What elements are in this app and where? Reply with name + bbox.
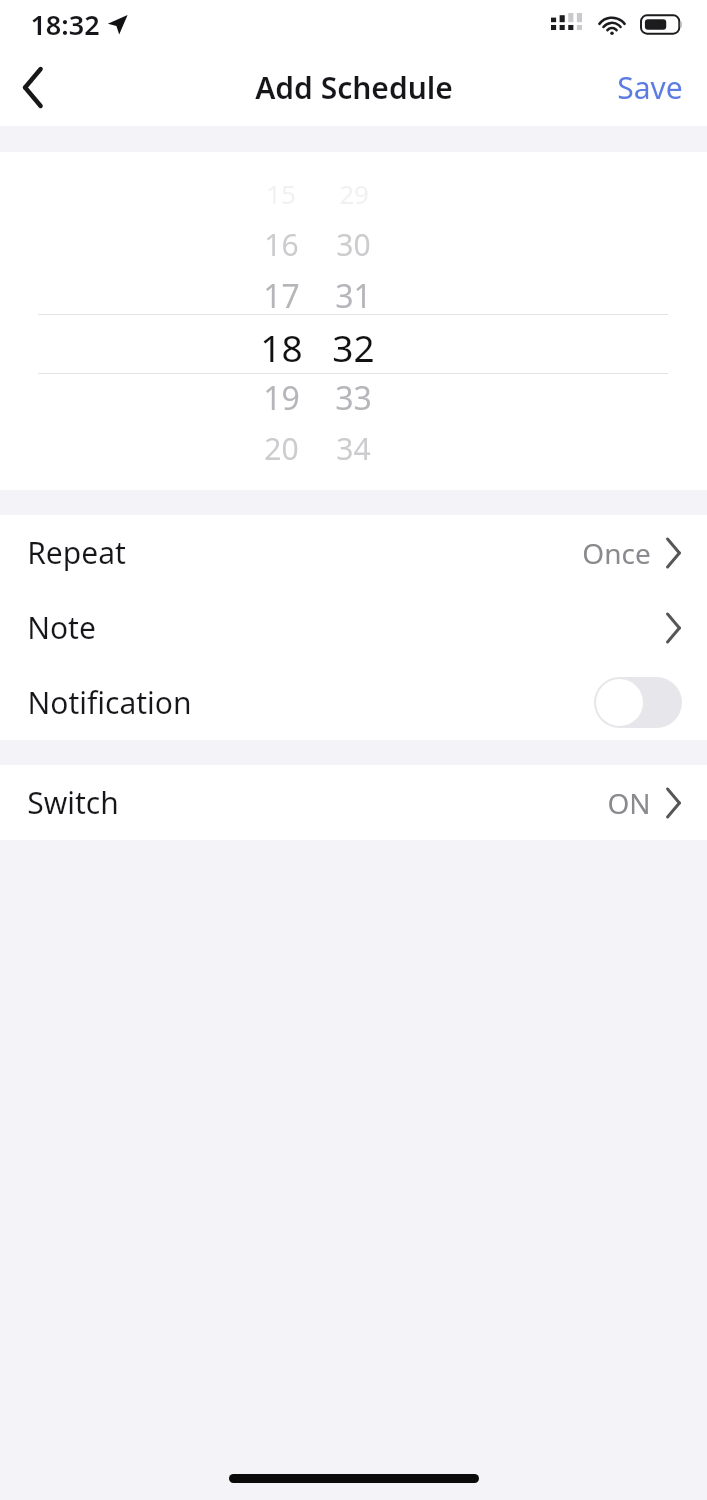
staticText: Note	[27, 607, 96, 648]
staticText: Switch	[27, 782, 119, 823]
staticText: Add Schedule	[255, 67, 453, 108]
staticText: Notification	[27, 682, 192, 723]
staticText: Repeat	[27, 532, 126, 573]
staticText: Once	[582, 534, 651, 572]
button[interactable]: Back	[0, 54, 66, 120]
staticText: ON	[607, 784, 651, 822]
staticText: 19	[263, 376, 300, 420]
staticText: 16	[264, 224, 299, 265]
staticText: 21	[266, 482, 296, 517]
staticText: 18:32	[30, 6, 100, 43]
staticText: 20	[264, 428, 299, 469]
button[interactable]: Switch	[0, 765, 707, 840]
staticText: 17	[263, 274, 300, 318]
staticText: 15	[266, 176, 296, 211]
staticText: 35	[339, 482, 369, 517]
staticText: 29	[339, 176, 369, 211]
button[interactable]: Notification toggle, off	[594, 677, 682, 728]
staticText: 31	[335, 274, 372, 318]
button[interactable]: Repeat	[0, 515, 707, 590]
staticText: 34	[336, 428, 371, 469]
button[interactable]: Save	[593, 52, 707, 123]
staticText: 32	[332, 322, 375, 372]
button[interactable]: Note	[0, 590, 707, 665]
staticText: 33	[335, 376, 372, 420]
staticText: 30	[336, 224, 371, 265]
staticText: Save	[617, 67, 683, 108]
staticText: 18	[260, 322, 303, 372]
